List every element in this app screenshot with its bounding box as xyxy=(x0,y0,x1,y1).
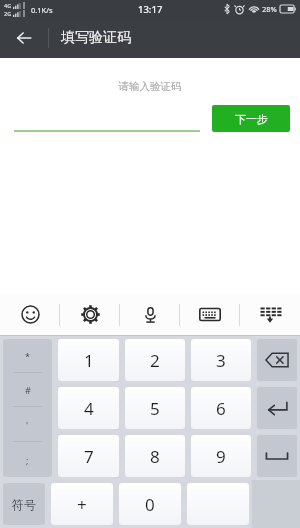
staticText: + xyxy=(77,493,87,516)
button[interactable]: Settings xyxy=(60,294,120,335)
button[interactable]: Back xyxy=(0,18,48,58)
button[interactable]: 0 xyxy=(119,483,181,525)
staticText: 28% xyxy=(262,4,277,14)
staticText: ' xyxy=(26,419,29,431)
button[interactable]: Emoji xyxy=(0,294,60,335)
staticText: 9 xyxy=(216,445,226,468)
button[interactable]: 5 xyxy=(125,387,185,429)
button[interactable]: 符号 xyxy=(3,483,45,525)
staticText: 4G xyxy=(4,2,12,9)
button[interactable]: 8 xyxy=(125,435,185,477)
staticText: 8 xyxy=(150,445,160,468)
button[interactable]: Keyboard layout xyxy=(180,294,240,335)
staticText: 填写验证码 xyxy=(61,29,131,47)
button[interactable]: 1 xyxy=(58,339,119,381)
staticText: ; xyxy=(26,454,29,466)
staticText: 0 xyxy=(145,493,155,516)
button[interactable]: Enter xyxy=(257,387,297,429)
staticText: 请输入验证码 xyxy=(0,80,300,93)
staticText: 符号 xyxy=(12,497,36,512)
button[interactable]: 下一步 xyxy=(212,105,290,132)
staticText: 0.1K/s xyxy=(31,5,53,15)
button[interactable] xyxy=(187,483,249,525)
button[interactable]: 2 xyxy=(125,339,185,381)
button[interactable]: 6 xyxy=(191,387,251,429)
button[interactable]: Voice input xyxy=(120,294,180,335)
button[interactable]: Hide keyboard xyxy=(240,294,300,335)
staticText: # xyxy=(25,384,31,396)
staticText: 13:17 xyxy=(138,3,163,16)
staticText: 1 xyxy=(84,349,94,372)
staticText: 5 xyxy=(150,397,160,420)
staticText: 3 xyxy=(216,349,226,372)
staticText: 2 xyxy=(150,349,160,372)
button[interactable]: 9 xyxy=(191,435,251,477)
button[interactable]: Delete xyxy=(257,339,297,381)
button[interactable]: 3 xyxy=(191,339,251,381)
button[interactable]: 7 xyxy=(58,435,119,477)
staticText: 4 xyxy=(84,397,94,420)
staticText: 7 xyxy=(84,445,94,468)
staticText: 下一步 xyxy=(235,112,268,126)
button[interactable]: 4 xyxy=(58,387,119,429)
staticText: * xyxy=(25,350,30,362)
button[interactable]: * xyxy=(3,339,52,477)
button[interactable]: Space xyxy=(257,435,297,477)
button[interactable] xyxy=(14,106,200,132)
button[interactable]: + xyxy=(51,483,113,525)
staticText: 2G xyxy=(4,10,12,17)
staticText: 6 xyxy=(216,397,226,420)
